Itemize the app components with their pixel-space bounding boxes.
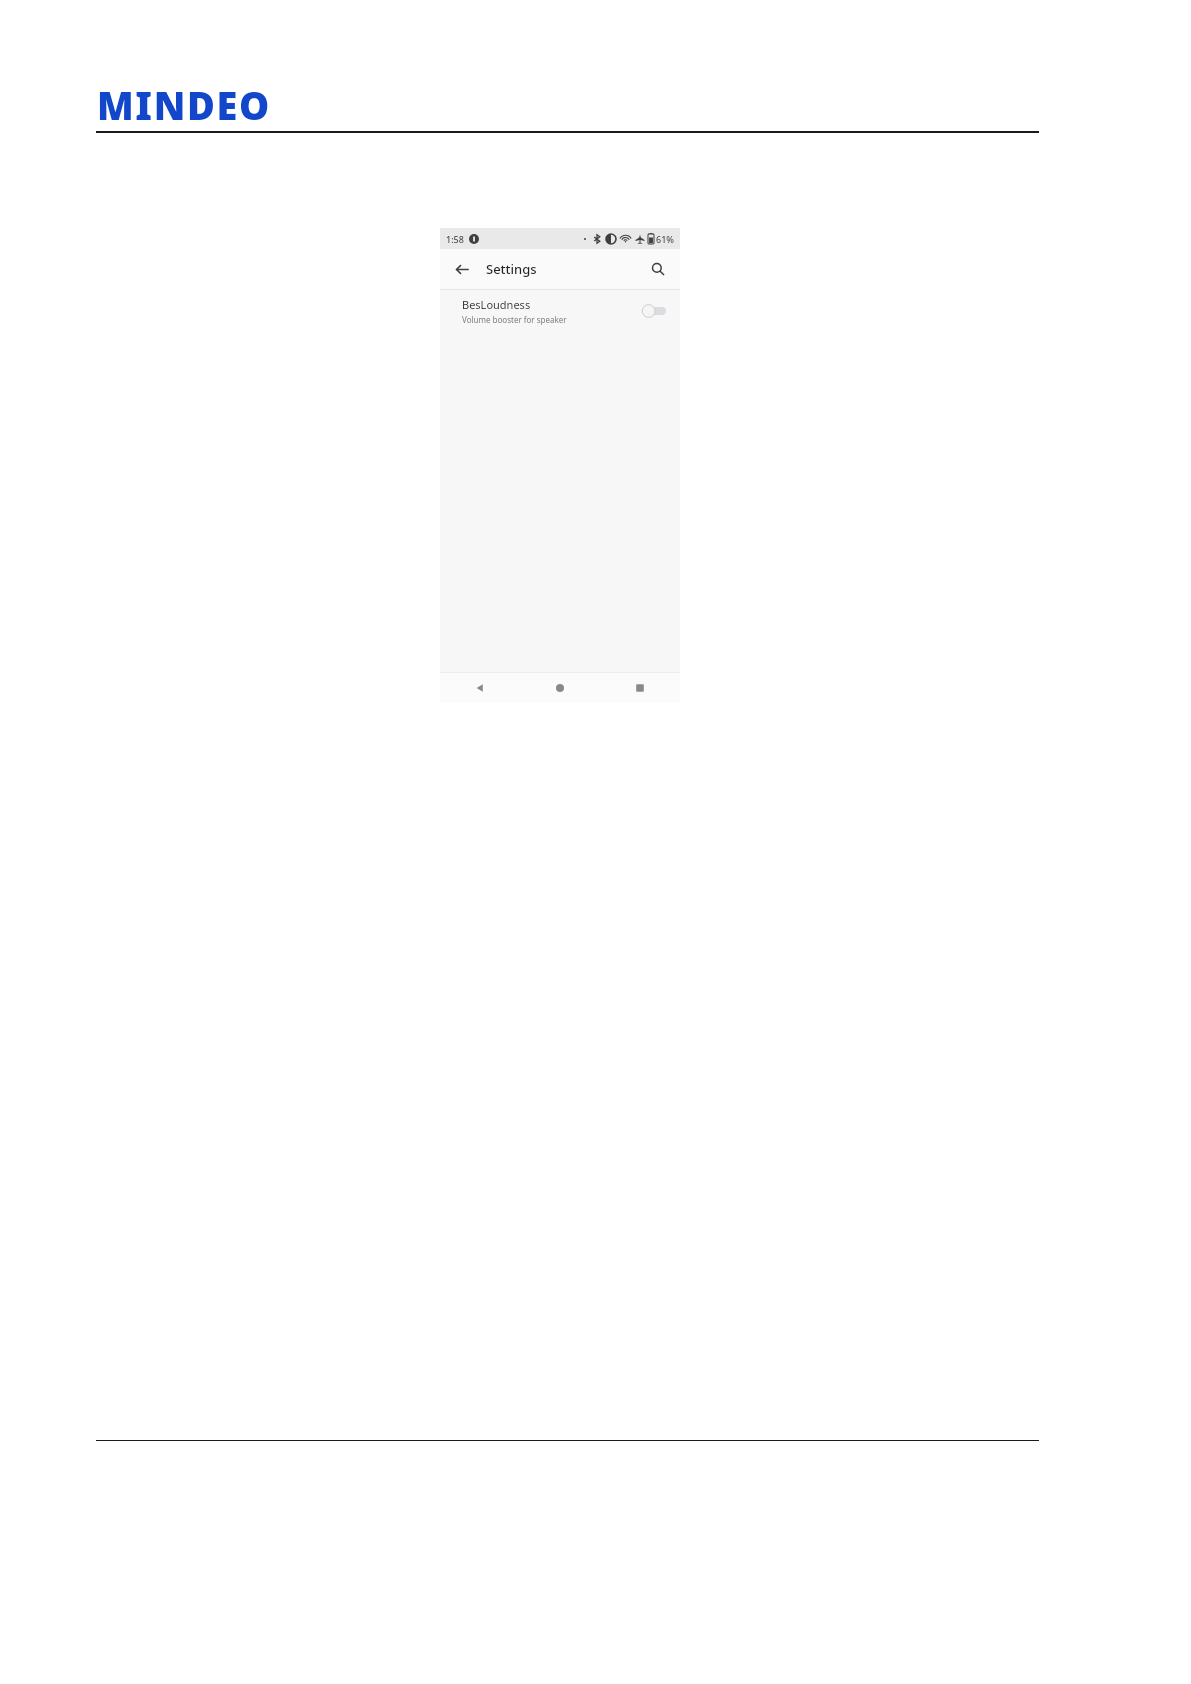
staticText: MINDEO xyxy=(97,79,271,131)
button[interactable]: Back xyxy=(440,673,520,703)
staticText: Settings xyxy=(486,260,537,278)
staticText: 1:58 xyxy=(446,233,464,245)
button[interactable]: BesLoudness xyxy=(440,290,680,332)
button[interactable]: Search xyxy=(644,255,672,283)
staticText: 61% xyxy=(656,233,674,245)
button[interactable]: Back xyxy=(448,255,476,283)
staticText: BesLoudness xyxy=(462,297,531,312)
staticText: Volume booster for speaker xyxy=(462,314,567,325)
button[interactable]: Recent apps xyxy=(600,673,680,703)
button[interactable]: Home xyxy=(520,673,600,703)
button[interactable]: BesLoudness toggle, off xyxy=(642,301,668,321)
